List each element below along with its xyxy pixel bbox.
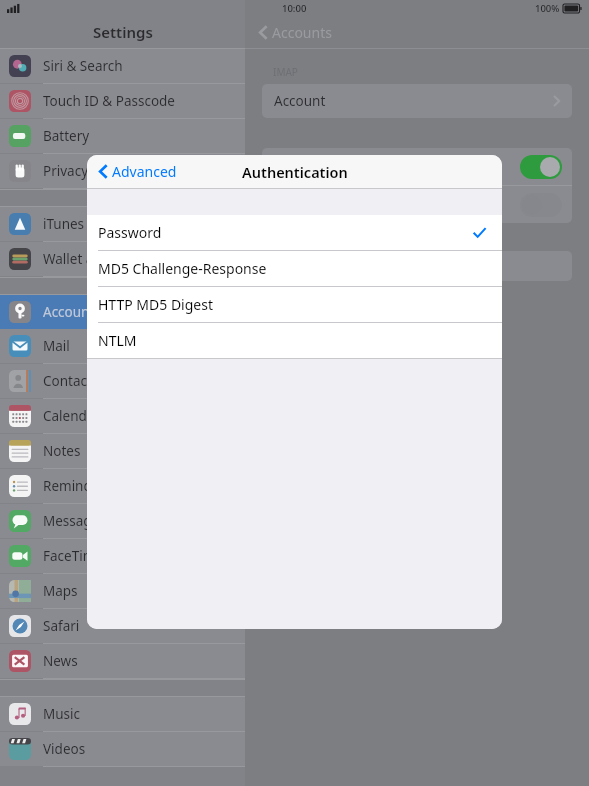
staticText: Videos <box>43 740 86 758</box>
button[interactable]: NTLM <box>87 323 502 358</box>
staticText: Contacts <box>43 372 99 390</box>
button[interactable]: Safari <box>0 609 245 644</box>
button[interactable]: Contacts <box>0 364 245 399</box>
staticText: FaceTime <box>43 547 103 565</box>
staticText: 10:00 <box>282 2 307 15</box>
staticText: Reminders <box>43 477 112 495</box>
staticText: Advanced <box>112 162 177 181</box>
staticText: HTTP MD5 Digest <box>98 295 213 314</box>
button[interactable]: Wallet a <box>0 242 245 277</box>
staticText: Maps <box>43 582 78 600</box>
staticText: Authentication <box>242 162 348 182</box>
staticText: IMAP <box>273 65 298 79</box>
button[interactable]: Videos <box>0 732 245 767</box>
staticText: News <box>43 652 78 670</box>
staticText: NTLM <box>98 331 137 350</box>
staticText: Music <box>43 705 81 723</box>
staticText: Messages <box>43 512 106 530</box>
button[interactable]: Accounts <box>0 295 245 329</box>
staticText: Battery <box>43 127 90 145</box>
button[interactable] <box>262 148 572 185</box>
button[interactable]: Touch ID & Passcode <box>0 84 245 119</box>
staticText: Settings <box>93 22 153 42</box>
button[interactable]: Mail <box>0 329 245 364</box>
button[interactable]: Privacy <box>0 154 245 189</box>
button[interactable] <box>262 186 572 223</box>
button[interactable]: Messages <box>0 504 245 539</box>
button[interactable]: Siri & Search <box>0 49 245 84</box>
button[interactable]: Accounts <box>256 20 335 45</box>
staticText: MD5 Challenge-Response <box>98 259 267 278</box>
staticText: Account <box>274 92 326 110</box>
button[interactable]: Account <box>262 84 572 118</box>
button[interactable]: Notes <box>0 434 245 469</box>
button[interactable]: News <box>0 644 245 679</box>
button[interactable]: iTunes <box>0 207 245 242</box>
button[interactable]: Password <box>87 215 502 251</box>
button[interactable]: Calendar <box>0 399 245 434</box>
staticText: Notes <box>43 442 81 460</box>
button[interactable]: Maps <box>0 574 245 609</box>
button[interactable] <box>262 251 572 281</box>
staticText: Touch ID & Passcode <box>43 92 175 110</box>
button[interactable]: FaceTime <box>0 539 245 574</box>
staticText: 100% <box>535 2 560 15</box>
staticText: Siri & Search <box>43 57 123 75</box>
staticText: iTunes <box>43 215 85 233</box>
button[interactable]: Advanced <box>96 158 180 185</box>
staticText: Password <box>98 223 162 242</box>
button[interactable]: Reminders <box>0 469 245 504</box>
button[interactable]: Music <box>0 697 245 732</box>
staticText: Mail <box>43 337 70 355</box>
staticText: Accounts <box>272 23 332 42</box>
button[interactable]: HTTP MD5 Digest <box>87 287 502 323</box>
button[interactable]: Battery <box>0 119 245 154</box>
staticText: Accounts <box>43 303 101 321</box>
button[interactable]: MD5 Challenge-Response <box>87 251 502 287</box>
staticText: Calendar <box>43 407 100 425</box>
staticText: Safari <box>43 617 80 635</box>
staticText: Wallet a <box>43 250 94 268</box>
staticText: Privacy <box>43 162 89 180</box>
